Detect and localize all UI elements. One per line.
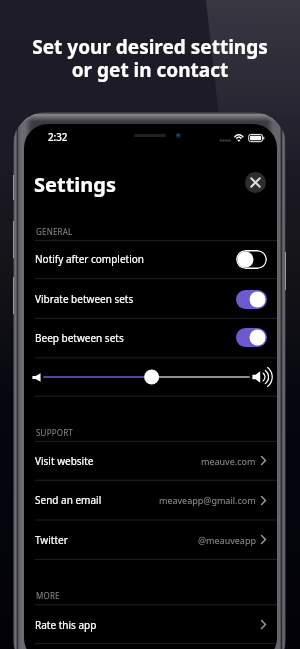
button[interactable]: Rate this app: [24, 605, 277, 644]
staticText: meaveapp@gmail.com: [159, 494, 256, 506]
staticText: MORE: [36, 590, 60, 601]
staticText: 2:32: [48, 131, 68, 144]
staticText: SUPPORT: [36, 427, 73, 438]
staticText: Twitter: [35, 533, 68, 547]
button[interactable]: Vibrate between sets: [24, 279, 277, 319]
staticText: meauve.com: [201, 455, 256, 467]
button[interactable]: Twitter: [24, 520, 277, 559]
button[interactable]: Close: [245, 172, 266, 193]
staticText: @meauveapp: [198, 534, 256, 546]
button[interactable]: Disabled: [236, 250, 267, 269]
button[interactable]: Notify after completion: [24, 240, 277, 278]
staticText: Rate this app: [35, 618, 97, 632]
staticText: Set your desired settings: [0, 34, 300, 60]
staticText: Beep between sets: [35, 331, 124, 345]
button[interactable]: Beep between sets: [24, 318, 277, 357]
staticText: GENERAL: [36, 226, 73, 237]
staticText: Send an email: [35, 493, 102, 507]
staticText: Vibrate between sets: [35, 292, 134, 306]
staticText: Visit website: [35, 454, 94, 468]
button[interactable]: Volume: [44, 368, 249, 386]
button[interactable]: Enabled: [236, 290, 267, 309]
button[interactable]: Send an email: [24, 480, 277, 520]
staticText: or get in contact: [0, 57, 300, 83]
staticText: Notify after completion: [35, 252, 144, 266]
staticText: Settings: [34, 171, 116, 198]
button[interactable]: Enabled: [236, 328, 267, 347]
button[interactable]: Visit website: [24, 441, 277, 480]
